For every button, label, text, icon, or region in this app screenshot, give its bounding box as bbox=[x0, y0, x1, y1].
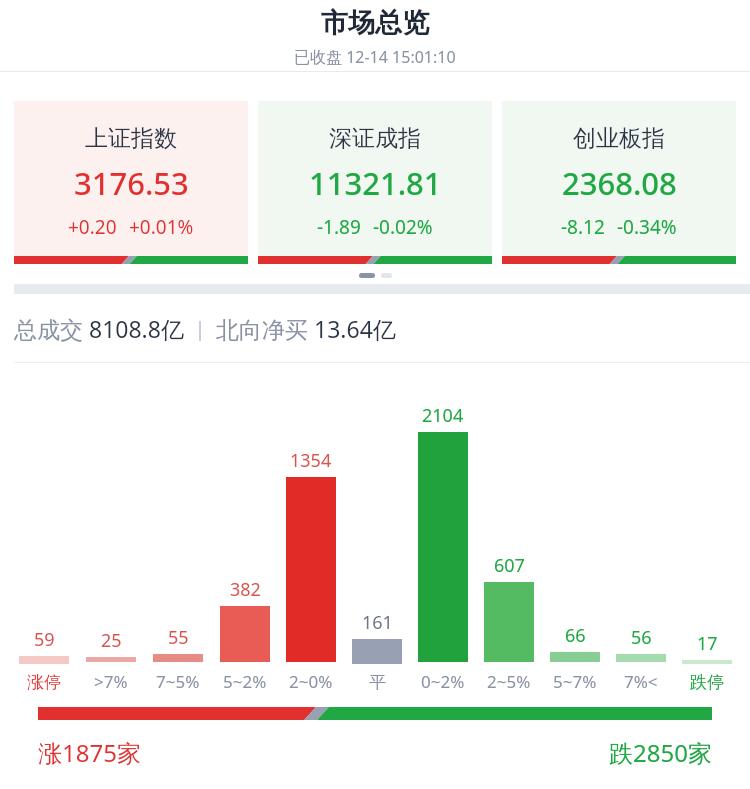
staticText: 25 bbox=[101, 628, 122, 653]
button[interactable]: 161 bbox=[344, 395, 410, 693]
button[interactable]: 66 bbox=[542, 395, 608, 693]
button[interactable]: 17 bbox=[674, 395, 740, 693]
button[interactable]: 创业板指 bbox=[502, 101, 736, 264]
staticText: 7~5% bbox=[156, 670, 200, 693]
staticText: 总成交 bbox=[14, 313, 89, 344]
button[interactable]: 总成交 bbox=[14, 294, 750, 362]
staticText: 13.64亿 bbox=[314, 313, 396, 344]
staticText: 8108.8亿 bbox=[89, 313, 184, 344]
staticText: 跌2850家 bbox=[609, 736, 712, 769]
staticText: 2104 bbox=[422, 403, 464, 428]
staticText: +0.01% bbox=[129, 214, 194, 240]
staticText: 已收盘 12-14 15:01:10 bbox=[294, 46, 456, 68]
staticText: 59 bbox=[34, 627, 55, 652]
button[interactable]: 59 bbox=[10, 395, 77, 693]
staticText: 2~0% bbox=[289, 670, 333, 693]
staticText: 0~2% bbox=[421, 670, 465, 693]
staticText: 跌停 bbox=[690, 672, 724, 693]
staticText: 涨停 bbox=[27, 672, 61, 693]
button[interactable]: 56 bbox=[608, 395, 674, 693]
staticText: 5~2% bbox=[223, 670, 267, 693]
staticText: -0.02% bbox=[373, 214, 433, 240]
staticText: 161 bbox=[362, 610, 393, 635]
staticText: 7%< bbox=[624, 670, 658, 693]
staticText: 3176.53 bbox=[74, 162, 189, 204]
button[interactable]: 382 bbox=[211, 395, 278, 693]
staticText: 创业板指 bbox=[573, 124, 665, 153]
staticText: 66 bbox=[565, 623, 586, 648]
button[interactable]: 25 bbox=[77, 395, 144, 693]
staticText: 市场总览 bbox=[321, 6, 429, 40]
staticText: 607 bbox=[494, 553, 525, 578]
staticText: 56 bbox=[631, 625, 652, 650]
button[interactable]: 607 bbox=[476, 395, 542, 693]
button[interactable]: 1354 bbox=[278, 395, 344, 693]
staticText: -1.89 bbox=[317, 214, 361, 240]
button[interactable]: 深证成指 bbox=[258, 101, 492, 264]
staticText: -8.12 bbox=[561, 214, 605, 240]
button[interactable]: 55 bbox=[144, 395, 211, 693]
staticText: 55 bbox=[168, 625, 189, 650]
staticText: -0.34% bbox=[617, 214, 677, 240]
staticText: 5~7% bbox=[553, 670, 597, 693]
staticText: 2368.08 bbox=[562, 162, 677, 204]
button[interactable]: 上证指数 bbox=[14, 101, 248, 264]
staticText: 平 bbox=[369, 672, 386, 693]
button[interactable]: 2104 bbox=[410, 395, 476, 693]
staticText: | bbox=[184, 315, 216, 342]
staticText: 17 bbox=[697, 631, 718, 656]
staticText: 2~5% bbox=[487, 670, 531, 693]
staticText: 上证指数 bbox=[85, 124, 177, 153]
staticText: 深证成指 bbox=[329, 124, 421, 153]
staticText: 382 bbox=[230, 577, 261, 602]
staticText: >7% bbox=[94, 670, 128, 693]
staticText: 北向净买 bbox=[216, 313, 314, 344]
staticText: 涨1875家 bbox=[38, 736, 141, 769]
staticText: 11321.81 bbox=[309, 162, 442, 204]
staticText: +0.20 bbox=[68, 214, 117, 240]
staticText: 1354 bbox=[290, 448, 332, 473]
